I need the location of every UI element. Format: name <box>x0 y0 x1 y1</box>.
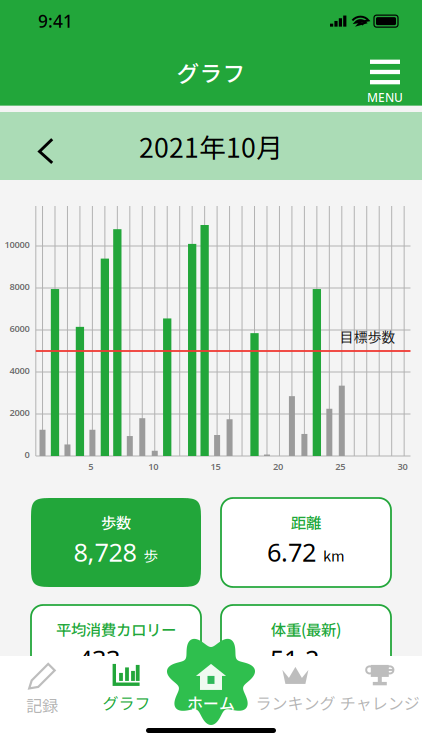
staticText: 2000 <box>9 406 29 419</box>
staticText: km <box>323 544 345 566</box>
staticText: 4000 <box>9 364 29 377</box>
staticText: 2021年10月 <box>139 127 283 165</box>
button[interactable]: 歩数 <box>31 498 201 587</box>
staticText: ホーム <box>187 691 235 714</box>
staticText: 433 <box>78 642 120 676</box>
staticText: 6000 <box>9 322 29 335</box>
staticText: 30 <box>398 460 408 473</box>
staticText: 25 <box>335 460 345 473</box>
button[interactable]: ランキング <box>253 664 338 714</box>
staticText: 距離 <box>291 511 321 533</box>
staticText: 歩 <box>143 544 158 566</box>
staticText: 平均消費カロリー <box>56 618 176 640</box>
staticText: 体重(最新) <box>271 618 341 640</box>
staticText: 記録 <box>26 693 58 717</box>
staticText: 8,728 <box>73 535 136 569</box>
button[interactable]: 体重(最新) <box>221 605 391 694</box>
staticText: 6.72 <box>267 535 316 569</box>
staticText: グラフ <box>176 56 245 88</box>
button[interactable]: Previous month <box>24 124 60 168</box>
button[interactable]: チャレンジ <box>338 664 422 714</box>
staticText: 8000 <box>9 280 29 293</box>
staticText: 51.2 <box>270 642 319 676</box>
staticText: 15 <box>210 460 220 473</box>
button[interactable]: 平均消費カロリー <box>31 605 201 694</box>
button[interactable]: グラフ <box>84 664 169 714</box>
button[interactable]: 距離 <box>221 498 391 587</box>
button[interactable] <box>169 664 253 714</box>
button[interactable]: Menu <box>361 55 409 110</box>
staticText: 10 <box>148 460 158 473</box>
staticText: チャレンジ <box>340 691 420 714</box>
staticText: 5 <box>88 460 93 473</box>
staticText: 20 <box>273 460 283 473</box>
staticText: 10000 <box>4 238 29 251</box>
staticText: MENU <box>367 89 403 105</box>
staticText: 0 <box>24 448 29 461</box>
staticText: 9:41 <box>38 10 73 33</box>
staticText: 歩数 <box>101 511 131 533</box>
staticText: ランキング <box>255 691 335 714</box>
staticText: 目標歩数 <box>339 326 395 347</box>
staticText: kcal <box>127 651 154 673</box>
button[interactable]: ホーム <box>165 634 257 726</box>
button[interactable]: 記録 <box>0 664 84 714</box>
staticText: グラフ <box>103 691 151 714</box>
